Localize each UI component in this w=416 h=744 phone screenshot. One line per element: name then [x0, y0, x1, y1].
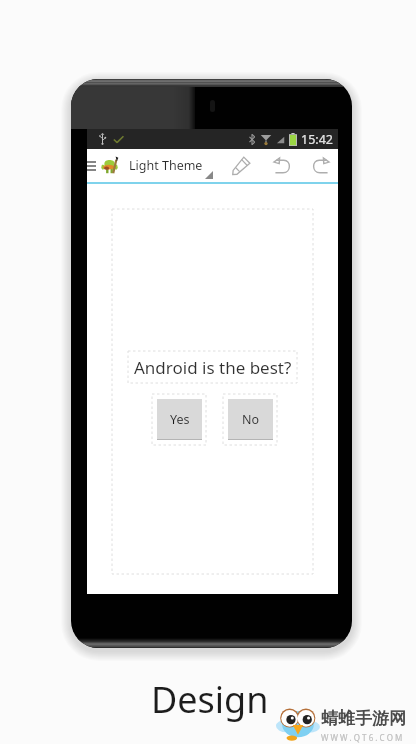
staticText: Design: [151, 675, 269, 724]
staticText: 蜻蜼手游网: [321, 708, 406, 729]
button[interactable]: No: [228, 399, 273, 440]
staticText: Yes: [170, 411, 190, 428]
button[interactable]: Edit: [228, 152, 254, 178]
button[interactable]: Redo: [308, 152, 334, 178]
button[interactable]: Undo: [268, 152, 294, 178]
button[interactable]: Yes: [157, 399, 202, 440]
staticText: 15:42: [301, 131, 333, 148]
staticText: Light Theme Se: [129, 157, 202, 174]
staticText: Android is the best?: [134, 356, 292, 379]
staticText: W W W . Q T 6 . C O M: [321, 732, 403, 743]
button[interactable]: Menu: [85, 154, 98, 178]
staticText: No: [242, 411, 260, 428]
